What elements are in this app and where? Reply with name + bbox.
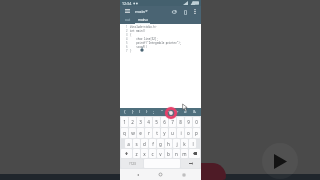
button[interactable]: z [133,149,140,158]
button[interactable]: p [193,128,200,138]
button[interactable]: y [161,128,168,138]
button[interactable]: Run code [181,7,190,16]
button[interactable]: 7 [169,117,176,127]
staticText: ( [139,109,141,115]
staticText: ) [146,109,148,115]
button[interactable]: # [183,109,188,115]
button[interactable]: out [120,16,135,24]
button[interactable]: Recent apps [178,169,189,180]
button[interactable]: r [145,128,152,138]
staticText: # [184,109,187,115]
button[interactable]: { [123,109,127,115]
button[interactable]: Home [155,169,166,180]
staticText: h [167,141,170,147]
staticText: j [176,141,178,147]
button[interactable]: x [141,149,148,158]
staticText: scanf() [130,45,148,49]
button[interactable]: 9 [185,117,192,127]
staticText: 8 [179,119,182,125]
button[interactable]: o [185,128,192,138]
staticText: 3 [126,33,128,37]
staticText: p [195,130,198,136]
button[interactable]: q [121,128,128,138]
button[interactable]: t [153,128,160,138]
button[interactable]: h [165,139,172,148]
button[interactable]: e [137,128,144,138]
button[interactable]: i [177,128,184,138]
button[interactable]: < [167,109,172,115]
button[interactable]: " [160,109,164,115]
button[interactable]: 1 [121,117,128,127]
button[interactable]: 4 [145,117,152,127]
staticText: o [187,130,190,136]
staticText: 7 [126,49,128,53]
button[interactable]: ( [138,109,142,115]
button[interactable]: u [169,128,176,138]
staticText: main* [135,8,148,14]
staticText: 6 [163,119,166,125]
button[interactable]: k [181,139,188,148]
button[interactable]: d [141,139,148,148]
button[interactable]: 6 [161,117,168,127]
staticText: { [124,109,126,115]
button[interactable]: 8 [177,117,184,127]
staticText: 4 [147,119,150,125]
staticText: t [156,130,158,136]
staticText: #include<stdio.h> [130,25,157,29]
staticText: n [175,151,178,157]
staticText: > [176,109,179,115]
button[interactable]: 3 [137,117,144,127]
staticText: i [180,130,182,136]
staticText: 7 [171,119,174,125]
button[interactable]: Play [262,143,298,179]
button[interactable] [181,159,200,168]
staticText: r [148,130,150,136]
staticText: 5 [155,119,158,125]
button[interactable]: 5 [153,117,160,127]
staticText: s [135,141,138,147]
staticText: int main() [130,29,146,33]
button[interactable]: Back [132,169,143,180]
button[interactable] [121,149,132,158]
staticText: x [143,151,146,157]
staticText: 2 [131,119,134,125]
button[interactable]: ?123 [121,159,143,168]
button[interactable]: l [189,139,196,148]
button[interactable]: } [131,109,135,115]
staticText: w [131,130,135,136]
button[interactable]: > [175,109,180,115]
button[interactable]: w [129,128,136,138]
button[interactable]: Undo [170,7,179,16]
button[interactable]: f [149,139,156,148]
button[interactable]: & [192,109,198,115]
staticText: printf("Integrable printer"); [130,41,182,45]
staticText: 4 [126,37,128,41]
button[interactable]: ; [152,109,156,115]
button[interactable]: n [173,149,180,158]
staticText: & [193,109,197,115]
button[interactable]: v [157,149,164,158]
button[interactable]: 2 [129,117,136,127]
button[interactable]: m [181,149,188,158]
staticText: z [135,151,138,157]
button[interactable]: g [157,139,164,148]
button[interactable]: a [125,139,132,148]
button[interactable]: s [133,139,140,148]
button[interactable] [189,149,200,158]
staticText: 12:34 [122,1,132,6]
staticText: 2 [126,29,128,33]
staticText: 1 [123,119,126,125]
button[interactable]: b [165,149,172,158]
button[interactable]: More options [191,7,199,15]
button[interactable]: 0 [193,117,200,127]
button[interactable]: Open navigation menu [123,7,131,15]
staticText: main.c [138,18,148,22]
staticText: out [125,18,131,22]
button[interactable]: c [149,149,156,158]
button[interactable]: j [173,139,180,148]
staticText: ?123 [129,162,136,166]
staticText: d [143,141,146,147]
button[interactable]: ) [145,109,149,115]
button[interactable]: main.c [135,16,150,24]
